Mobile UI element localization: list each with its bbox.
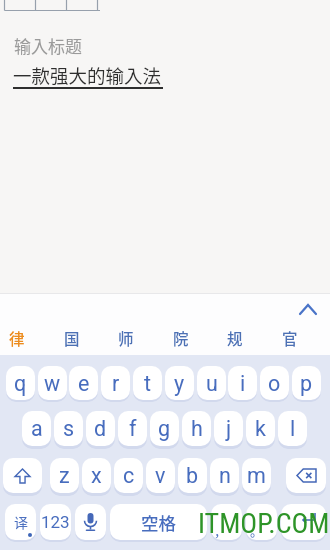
staticText: 院 xyxy=(173,327,189,349)
staticText: 官 xyxy=(282,327,298,349)
staticText: s xyxy=(63,416,75,441)
staticText: q xyxy=(14,371,27,396)
staticText: z xyxy=(59,463,70,488)
button[interactable]: 。 xyxy=(246,504,277,540)
staticText: t xyxy=(144,371,152,396)
button[interactable]: 规 xyxy=(211,324,259,352)
button[interactable]: v xyxy=(146,458,175,493)
button[interactable]: ， xyxy=(211,504,242,540)
staticText: c xyxy=(123,463,135,488)
staticText: j xyxy=(226,416,232,441)
staticText: 空格 xyxy=(141,510,176,535)
button[interactable] xyxy=(75,504,106,540)
button[interactable]: 师 xyxy=(102,324,150,352)
button[interactable]: o xyxy=(260,366,289,400)
staticText: x xyxy=(91,463,102,488)
staticText: n xyxy=(219,463,231,488)
staticText: 师 xyxy=(118,327,134,349)
staticText: h xyxy=(191,416,203,441)
button[interactable]: l xyxy=(278,411,307,446)
button[interactable]: p xyxy=(292,366,321,400)
button[interactable]: a xyxy=(22,411,51,446)
button[interactable] xyxy=(292,298,324,322)
button[interactable]: f xyxy=(118,411,147,446)
staticText: i xyxy=(240,371,246,396)
staticText: p xyxy=(300,371,313,396)
staticText: b xyxy=(186,463,199,488)
button[interactable]: k xyxy=(246,411,275,446)
staticText: 国 xyxy=(64,327,80,349)
button[interactable]: 空格 xyxy=(110,504,207,540)
button[interactable]: n xyxy=(210,458,239,493)
button[interactable] xyxy=(281,504,326,540)
button[interactable]: q xyxy=(6,366,35,400)
button[interactable]: h xyxy=(182,411,211,446)
button[interactable]: d xyxy=(86,411,115,446)
button[interactable]: w xyxy=(38,366,67,400)
button[interactable]: u xyxy=(197,366,226,400)
staticText: u xyxy=(206,371,218,396)
button[interactable]: 译 xyxy=(5,504,36,540)
button[interactable]: m xyxy=(242,458,271,493)
staticText: 输入标题 xyxy=(14,33,82,58)
staticText: e xyxy=(78,371,90,396)
staticText: a xyxy=(31,416,43,441)
button[interactable]: c xyxy=(114,458,143,493)
button[interactable]: 院 xyxy=(157,324,205,352)
staticText: k xyxy=(255,416,266,441)
staticText: w xyxy=(44,371,61,396)
button[interactable]: z xyxy=(50,458,79,493)
staticText: 律 xyxy=(9,327,25,349)
staticText: f xyxy=(129,416,137,441)
staticText: 。 xyxy=(250,521,264,540)
button[interactable]: g xyxy=(150,411,179,446)
staticText: ， xyxy=(214,521,228,540)
button[interactable] xyxy=(286,458,326,493)
staticText: o xyxy=(268,371,281,396)
staticText: 一款强大的输入法 xyxy=(13,62,162,89)
staticText: m xyxy=(247,463,266,488)
staticText: l xyxy=(290,416,296,441)
button[interactable]: 律 xyxy=(0,324,41,352)
button[interactable]: i xyxy=(228,366,257,400)
staticText: r xyxy=(112,371,120,396)
button[interactable]: 官 xyxy=(266,324,314,352)
button[interactable]: b xyxy=(178,458,207,493)
staticText: g xyxy=(158,416,171,441)
staticText: v xyxy=(155,463,166,488)
staticText: y xyxy=(174,371,185,396)
staticText: ITMOP.COM xyxy=(198,507,330,540)
staticText: 规 xyxy=(227,327,243,349)
button[interactable]: 国 xyxy=(48,324,96,352)
button[interactable]: y xyxy=(165,366,194,400)
button[interactable]: t xyxy=(133,366,162,400)
button[interactable]: e xyxy=(69,366,98,400)
button[interactable]: x xyxy=(82,458,111,493)
button[interactable]: j xyxy=(214,411,243,446)
button[interactable]: s xyxy=(54,411,83,446)
staticText: 123 xyxy=(41,512,70,532)
staticText: 译 xyxy=(14,512,28,532)
button[interactable] xyxy=(3,458,42,493)
button[interactable]: r xyxy=(101,366,130,400)
staticText: d xyxy=(94,416,107,441)
button[interactable]: 123 xyxy=(40,504,71,540)
